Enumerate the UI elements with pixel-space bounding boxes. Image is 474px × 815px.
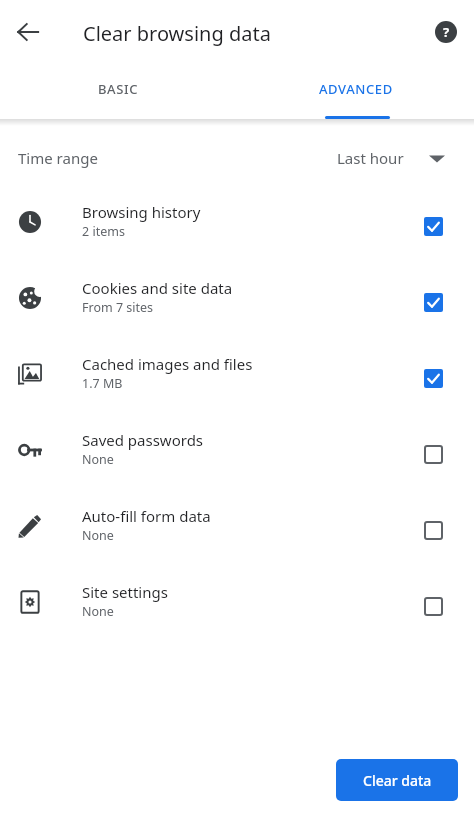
staticText: Cookies and site data — [82, 278, 233, 298]
button[interactable]: Back — [8, 12, 48, 52]
staticText: Clear browsing data — [83, 20, 271, 47]
staticText: Site settings — [82, 582, 168, 602]
button[interactable]: Auto-fill form data — [0, 488, 474, 564]
staticText: Time range — [18, 148, 98, 168]
button[interactable]: Help — [426, 12, 466, 52]
button[interactable]: Cached images and files — [0, 336, 474, 412]
button[interactable]: Site settings — [0, 564, 474, 640]
staticText: None — [82, 603, 114, 620]
staticText: ? — [443, 23, 450, 41]
staticText: Clear data — [363, 771, 432, 790]
staticText: None — [82, 451, 114, 468]
staticText: Last hour — [337, 148, 404, 168]
staticText: Cached images and files — [82, 354, 253, 374]
button[interactable]: Clear data — [336, 759, 458, 801]
button[interactable]: Cookies and site data — [414, 283, 452, 321]
staticText: 1.7 MB — [82, 375, 123, 392]
staticText: Browsing history — [82, 202, 201, 222]
button[interactable]: Cached images and files — [414, 359, 452, 397]
staticText: ADVANCED — [319, 80, 393, 98]
staticText: Saved passwords — [82, 430, 204, 450]
staticText: From 7 sites — [82, 299, 154, 316]
button[interactable]: Time range — [0, 126, 474, 184]
button[interactable]: ADVANCED — [237, 65, 474, 119]
button[interactable]: BASIC — [0, 65, 237, 119]
button[interactable]: Site settings — [414, 587, 452, 625]
button[interactable]: Saved passwords — [414, 435, 452, 473]
staticText: None — [82, 527, 114, 544]
button[interactable]: Cookies and site data — [0, 260, 474, 336]
button[interactable]: Auto-fill form data — [414, 511, 452, 549]
staticText: 2 items — [82, 223, 125, 240]
button[interactable]: Browsing history — [414, 207, 452, 245]
button[interactable]: Browsing history — [0, 184, 474, 260]
button[interactable]: Saved passwords — [0, 412, 474, 488]
staticText: BASIC — [98, 80, 139, 98]
staticText: Auto-fill form data — [82, 506, 211, 526]
